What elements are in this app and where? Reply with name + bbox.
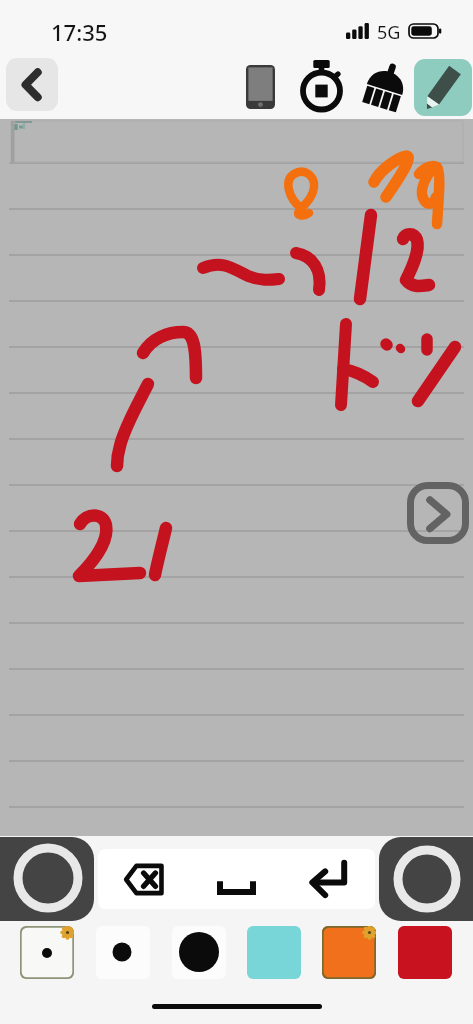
button[interactable]: Colour option 3: [172, 926, 226, 979]
button[interactable]: Colour option 1: [20, 926, 74, 979]
button[interactable]: Next field: [379, 837, 473, 921]
button[interactable]: Enter: [282, 849, 375, 909]
button[interactable]: Previous field: [0, 837, 94, 921]
button[interactable]: Next: [407, 482, 469, 544]
button[interactable]: Erase all: [354, 58, 406, 112]
button[interactable]: Pen: [414, 59, 472, 116]
button[interactable]: Colour option 6: [398, 926, 452, 979]
staticText: 5G: [377, 20, 401, 45]
button[interactable]: Backspace: [98, 849, 190, 909]
button[interactable]: Colour option 4: [247, 926, 301, 979]
button[interactable]: Colour option 2: [96, 926, 150, 979]
button[interactable]: Colour option 5: [322, 926, 376, 979]
staticText: 17:35: [51, 17, 108, 47]
button[interactable]: Device: [238, 58, 284, 112]
button[interactable]: Record: [296, 58, 346, 112]
button[interactable]: Space: [190, 849, 282, 909]
button[interactable]: Back: [6, 58, 58, 111]
